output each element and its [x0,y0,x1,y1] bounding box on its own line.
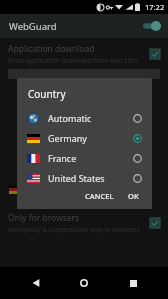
button[interactable]: Only for browsers [8,212,160,234]
staticText: Germany [48,132,133,144]
button[interactable]: Home [71,270,97,296]
staticText: Application download [8,43,95,55]
button[interactable]: Automatic [17,108,152,128]
staticText: WebGuard [9,20,57,33]
button[interactable]: Application download [8,43,160,65]
staticText: Anonymity & compression only in browsers [8,225,140,234]
staticText: 17:22 [145,2,165,12]
button[interactable]: Germany [17,128,152,148]
button[interactable]: Toggle option [150,218,160,228]
button[interactable]: United States [17,168,152,188]
button[interactable]: CANCEL [81,188,118,202]
staticText: France [48,152,133,164]
staticText: OK [128,191,139,199]
button[interactable]: Country [8,179,160,200]
button[interactable]: Back [23,270,49,296]
button[interactable]: Toggle option [150,49,160,59]
staticText: Only for browsers [8,212,80,224]
button[interactable]: Enable WebGuard [142,19,162,33]
button[interactable]: OK [124,188,143,202]
staticText: Block application download from web site… [8,56,139,65]
staticText: Automatic [48,112,133,124]
staticText: United States [48,172,133,184]
button[interactable]: Recent apps [120,270,146,296]
staticText: Country [28,87,66,101]
staticText: Country [31,179,62,190]
staticText: CANCEL [85,191,114,199]
button[interactable]: France [17,148,152,168]
